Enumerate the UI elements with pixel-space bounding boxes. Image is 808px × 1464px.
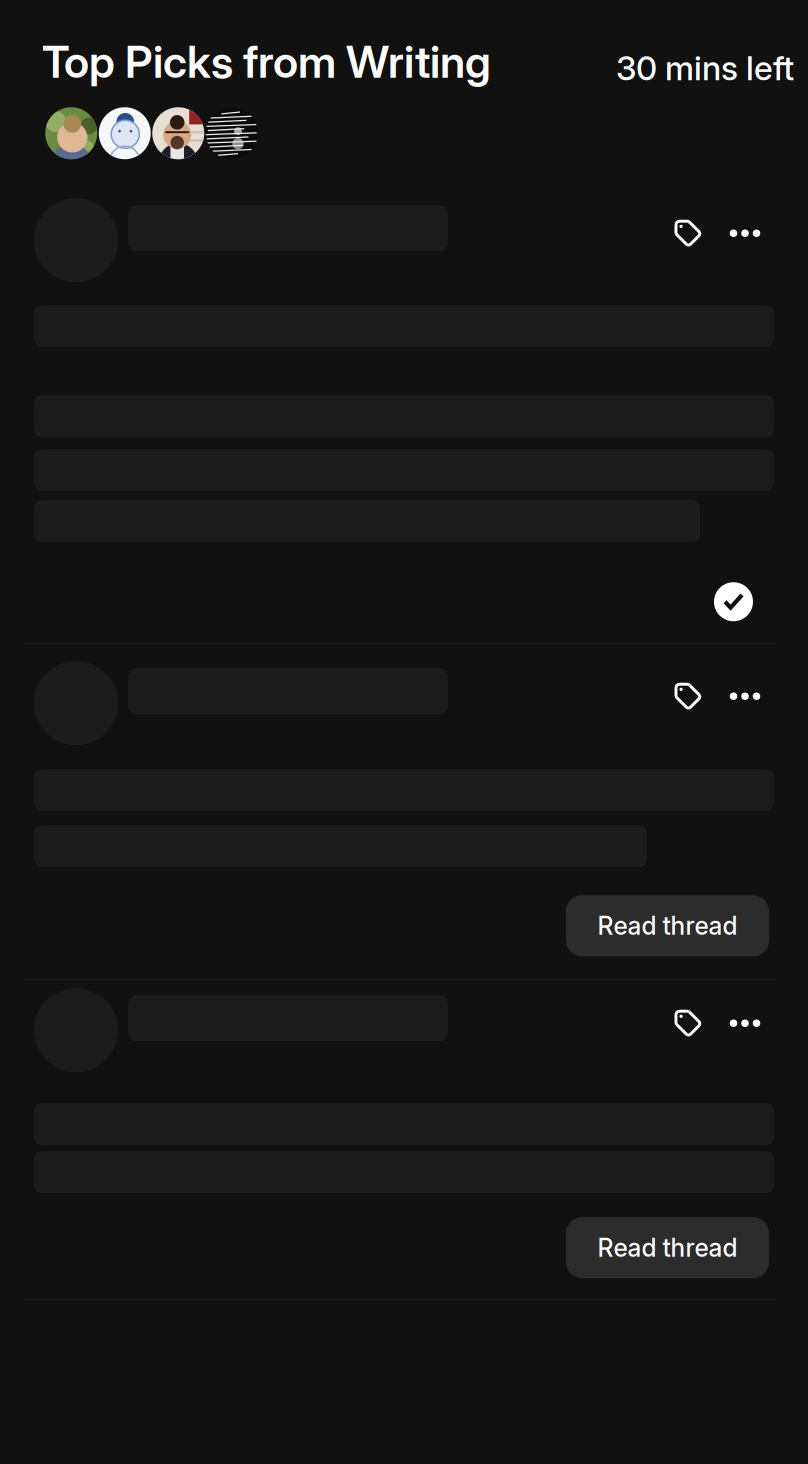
button[interactable]: Participants xyxy=(45,107,258,159)
button[interactable]: Tag xyxy=(666,1001,710,1045)
button[interactable]: More options xyxy=(723,674,767,718)
button[interactable]: Tag xyxy=(666,211,710,255)
button[interactable]: More options xyxy=(723,1001,767,1045)
button[interactable]: Read thread xyxy=(566,895,769,956)
staticText: Read thread xyxy=(597,1233,737,1263)
staticText: Top Picks from Writing xyxy=(42,35,491,88)
button[interactable]: Mark as done xyxy=(714,582,753,621)
button[interactable]: More options xyxy=(723,211,767,255)
staticText: Read thread xyxy=(597,911,737,941)
button[interactable]: Tag xyxy=(666,674,710,718)
button[interactable]: Read thread xyxy=(566,1217,769,1278)
staticText: 30 mins left xyxy=(616,48,794,88)
